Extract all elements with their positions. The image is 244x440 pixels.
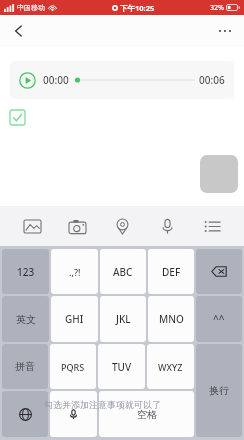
button[interactable]: GHI (51, 296, 98, 342)
staticText: 换行 (209, 384, 229, 397)
button[interactable]: Voice message (150, 209, 184, 243)
button[interactable]: MNO (148, 296, 194, 342)
button[interactable]: TUV (98, 344, 145, 389)
staticText: DEF (162, 265, 181, 279)
button[interactable]: Avatar (200, 155, 238, 193)
staticText: ^^ (213, 312, 225, 326)
staticText: ABC (113, 265, 133, 279)
staticText: .,?! (69, 266, 81, 278)
staticText: 勾选并添加注意事项就可以了 (44, 399, 161, 410)
button[interactable]: Checkbox checked (10, 110, 25, 125)
staticText: 00:06 (199, 73, 225, 87)
button[interactable]: 换行 (196, 344, 242, 437)
button[interactable]: 拼音 (2, 344, 48, 389)
button[interactable]: JKL (100, 296, 146, 342)
button[interactable]: PQRS (50, 344, 96, 389)
button[interactable]: ^^ (196, 296, 242, 342)
staticText: JKL (116, 312, 131, 326)
staticText: MNO (159, 312, 184, 326)
staticText: 空格 (137, 408, 157, 421)
button[interactable]: 123 (2, 249, 49, 294)
staticText: WXYZ (158, 361, 183, 373)
button[interactable]: List (195, 209, 229, 243)
button[interactable]: Play (10, 61, 234, 99)
button[interactable]: Location (105, 209, 139, 243)
button[interactable]: Camera (60, 209, 94, 243)
staticText: 下午10:25 (120, 3, 155, 13)
button[interactable]: Play (19, 72, 36, 89)
staticText: TUV (112, 360, 132, 374)
button[interactable]: Voice input (50, 391, 97, 437)
staticText: GHI (65, 312, 84, 326)
staticText: 00:00 (43, 73, 69, 87)
button[interactable]: More options (212, 18, 238, 44)
button[interactable]: Switch language (2, 391, 48, 437)
button[interactable]: Backspace (196, 249, 242, 294)
button[interactable]: Back (6, 18, 32, 44)
button[interactable]: 空格 (99, 391, 194, 437)
button[interactable]: DEF (148, 249, 194, 294)
button[interactable]: ABC (100, 249, 146, 294)
staticText: 拼音 (15, 360, 35, 373)
staticText: PQRS (61, 361, 85, 373)
button[interactable]: WXYZ (147, 344, 194, 389)
staticText: 英文 (16, 313, 36, 326)
button[interactable]: .,?! (51, 249, 98, 294)
button[interactable]: 英文 (2, 296, 49, 342)
staticText: 中国移动 (17, 3, 45, 12)
button[interactable]: Photos (15, 209, 49, 243)
staticText: 123 (17, 265, 35, 279)
staticText: 32% (210, 3, 224, 13)
